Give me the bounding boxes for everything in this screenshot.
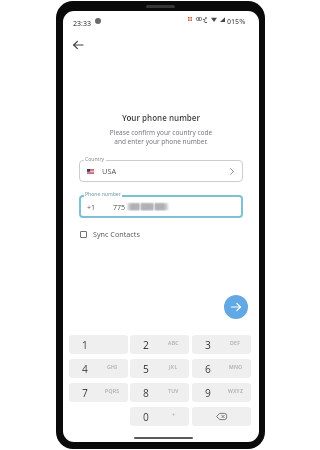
button[interactable]: 4	[69, 359, 128, 378]
button[interactable]: 1	[69, 335, 128, 354]
button[interactable]: 9	[192, 383, 251, 402]
button[interactable]: Next	[224, 295, 248, 319]
staticText: Your phone number	[122, 112, 200, 123]
button[interactable]: 8	[130, 383, 189, 402]
staticText: Please confirm your country code and ent…	[63, 128, 259, 146]
staticText: 7	[82, 386, 88, 400]
staticText: USA	[102, 166, 117, 176]
staticText: 6	[205, 362, 211, 376]
button[interactable]: 2	[130, 335, 189, 354]
staticText: TUV	[168, 388, 179, 395]
staticText: Sync Contacts	[93, 229, 140, 239]
staticText: 775	[113, 202, 126, 212]
staticText: PQRS	[105, 388, 120, 395]
staticText: 9	[205, 386, 211, 400]
button[interactable]: 5	[130, 359, 189, 378]
staticText: DEF	[230, 340, 241, 347]
button[interactable]: USA	[79, 160, 243, 182]
staticText: 8	[143, 386, 149, 400]
staticText: +	[172, 412, 176, 419]
staticText: GHI	[107, 364, 118, 371]
button[interactable]: Sync Contacts	[78, 227, 142, 241]
staticText: Country	[85, 156, 105, 163]
staticText: 0	[143, 410, 149, 424]
button[interactable]: +1	[79, 195, 243, 218]
staticText: +1	[87, 202, 96, 212]
staticText: MNO	[229, 364, 243, 371]
staticText: 5	[143, 362, 149, 376]
staticText: 23:33	[73, 18, 92, 28]
button[interactable]: Backspace	[192, 407, 251, 426]
button[interactable]: 7	[69, 383, 128, 402]
button[interactable]: 3	[192, 335, 251, 354]
staticText: 3	[205, 338, 211, 352]
staticText: ABC	[168, 340, 179, 347]
staticText: 2	[143, 338, 149, 352]
staticText: JKL	[169, 364, 178, 371]
button[interactable]: 0	[130, 407, 189, 426]
staticText: WXYZ	[228, 388, 244, 395]
staticText: Phone number	[85, 191, 121, 198]
staticText: 1	[82, 338, 88, 352]
staticText: 4	[82, 362, 88, 376]
staticText: 015%	[227, 16, 246, 26]
button[interactable]: Back	[66, 33, 90, 57]
button[interactable]: 6	[192, 359, 251, 378]
